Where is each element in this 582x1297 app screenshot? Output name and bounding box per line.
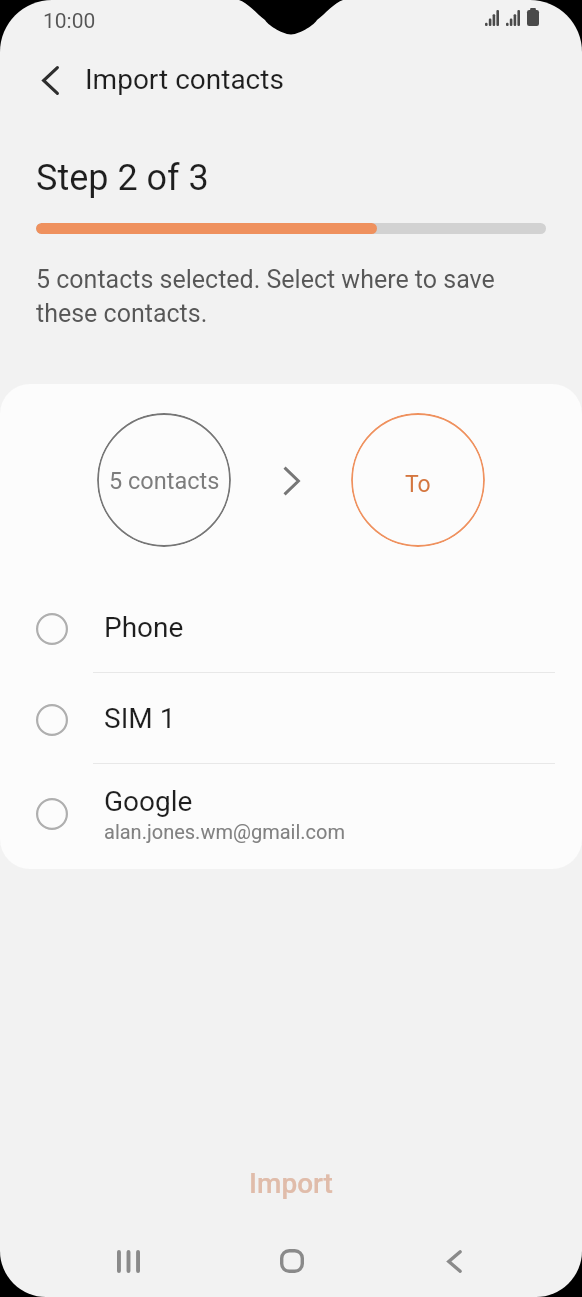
button[interactable]: Back: [414, 1230, 495, 1292]
staticText: 10:00: [43, 9, 96, 34]
staticText: 5 contacts: [109, 467, 220, 495]
staticText: Phone: [104, 611, 184, 644]
staticText: Import: [249, 1167, 333, 1200]
staticText: SIM 1: [104, 702, 176, 735]
button[interactable]: To: [351, 413, 485, 547]
staticText: alan.jones.wm@gmail.com: [104, 820, 345, 843]
button[interactable]: Google: [0, 764, 582, 862]
staticText: To: [405, 471, 431, 498]
button[interactable]: 5 contacts: [97, 413, 231, 547]
button[interactable]: Import: [0, 1142, 582, 1224]
staticText: Step 2 of 3: [36, 157, 209, 199]
staticText: Google: [104, 785, 193, 818]
button[interactable]: Recent apps: [88, 1230, 169, 1292]
button[interactable]: SIM 1: [0, 673, 582, 764]
staticText: Import contacts: [85, 63, 284, 96]
staticText: 5 contacts selected. Select where to sav…: [36, 265, 495, 328]
button[interactable]: Back: [18, 48, 82, 112]
button[interactable]: Home: [251, 1230, 332, 1292]
button[interactable]: Phone: [0, 582, 582, 673]
